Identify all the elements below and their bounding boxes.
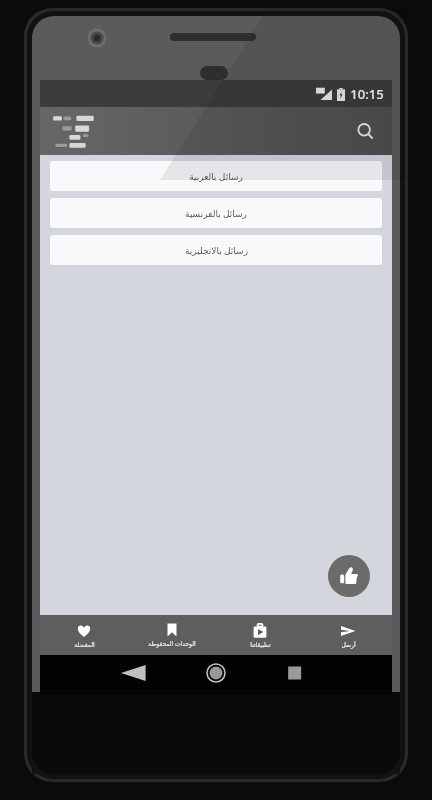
staticText: رسائل بالفرنسية	[185, 207, 247, 219]
button[interactable]: Like	[328, 555, 370, 597]
button[interactable]: المفضلة	[40, 620, 128, 651]
button[interactable]: الوحدات المحفوظة	[128, 619, 216, 651]
staticText: رسائل بالانجليزية	[185, 244, 248, 256]
button[interactable]: Search	[348, 114, 382, 148]
staticText: رسائل بالعربية	[189, 170, 243, 182]
staticText: الوحدات المحفوظة	[148, 640, 196, 648]
button[interactable]: رسائل بالعربية	[50, 161, 382, 191]
button[interactable]: أرسل	[304, 620, 392, 651]
staticText: تطبيقاتنا	[250, 641, 271, 648]
staticText: أرسل	[341, 641, 356, 648]
button[interactable]: رسائل بالانجليزية	[50, 235, 382, 265]
staticText: المفضلة	[74, 641, 95, 648]
button[interactable]: رسائل بالفرنسية	[50, 198, 382, 228]
button[interactable]: تطبيقاتنا	[216, 620, 304, 651]
staticText: 10:15	[350, 85, 384, 103]
